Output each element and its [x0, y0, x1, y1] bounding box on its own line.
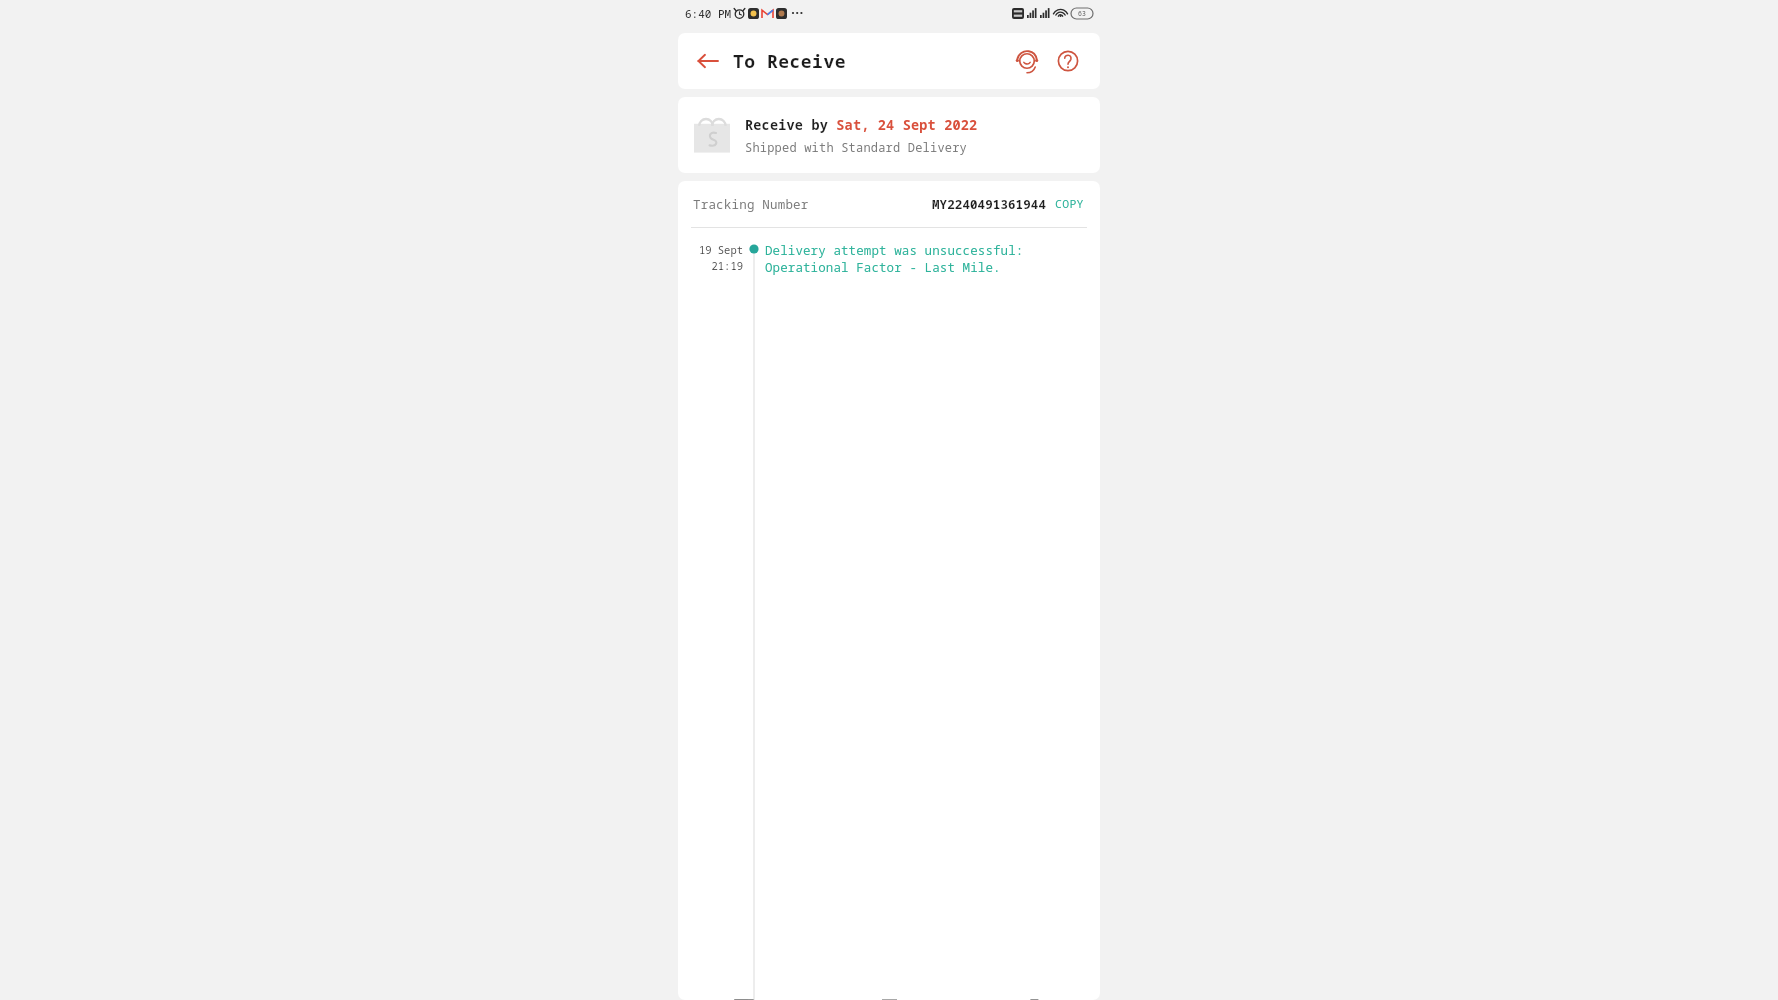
staticText: MY2240491361944	[932, 196, 1047, 213]
button[interactable]: Customer support chat	[1010, 44, 1044, 78]
staticText: COPY	[1055, 196, 1084, 212]
staticText: 6:40 PM	[685, 6, 732, 21]
staticText: Delivery attempt was unsuccessful: Opera…	[765, 242, 1086, 276]
button[interactable]: Back	[693, 46, 723, 76]
staticText: Shipped with Standard Delivery	[745, 139, 968, 155]
button[interactable]: Receive by Sat, 24 Sept 2022	[678, 97, 1100, 173]
button[interactable]: 19 Sept	[678, 237, 1100, 1000]
button[interactable]: COPY	[1054, 193, 1085, 215]
staticText: Tracking Number	[693, 196, 809, 213]
staticText: 19 Sept	[698, 243, 743, 257]
button[interactable]: Help	[1051, 44, 1085, 78]
staticText: Receive by Sat, 24 Sept 2022	[745, 116, 978, 134]
staticText: 21:19	[711, 259, 743, 273]
staticText: To Receive	[733, 49, 846, 74]
staticText: 63	[1078, 9, 1086, 18]
